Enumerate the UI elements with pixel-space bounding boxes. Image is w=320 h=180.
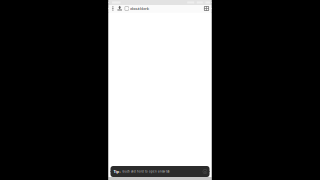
staticText: Touch and hold to open a new tab bbox=[122, 170, 170, 173]
staticText: Tip: bbox=[113, 169, 120, 174]
button[interactable]: about:blank bbox=[125, 5, 204, 12]
button[interactable]: Dismiss bbox=[203, 169, 207, 174]
staticText: about:blank bbox=[130, 6, 149, 11]
button[interactable]: Tabs bbox=[204, 6, 209, 11]
button[interactable]: Share bbox=[117, 5, 122, 12]
button[interactable]: More bbox=[111, 5, 114, 12]
